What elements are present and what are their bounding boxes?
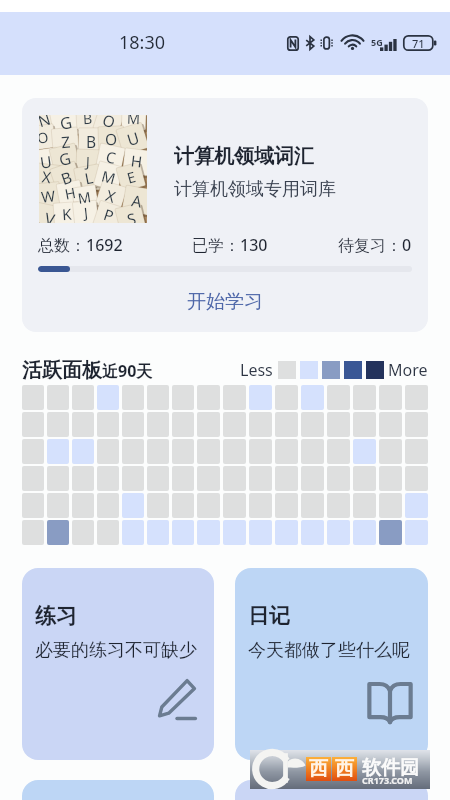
staticText: J — [86, 152, 90, 171]
staticText: K — [61, 204, 73, 223]
button[interactable]: N — [22, 98, 428, 332]
staticText: A — [130, 189, 144, 212]
staticText: 71 — [412, 36, 425, 51]
staticText: More — [388, 359, 428, 381]
staticText: H — [63, 183, 78, 205]
staticText: 已学：130 — [192, 234, 268, 256]
staticText: 必要的练习不可缺少 — [35, 639, 197, 662]
staticText: L — [83, 167, 95, 189]
staticText: 18:30 — [119, 30, 166, 55]
staticText: B — [58, 166, 75, 189]
button[interactable] — [22, 780, 214, 800]
staticText: 日记 — [248, 603, 290, 629]
staticText: 西 — [309, 757, 328, 781]
other: Diary — [366, 682, 414, 722]
staticText: V — [43, 207, 57, 223]
staticText: 软件园 — [362, 756, 419, 780]
button[interactable]: 开始学习 — [22, 279, 428, 325]
staticText: 计算机领域词汇 — [174, 144, 314, 169]
staticText: CR173.COM — [362, 774, 413, 786]
button[interactable] — [235, 780, 428, 800]
staticText: 待复习：0 — [338, 234, 412, 256]
staticText: X — [41, 166, 53, 189]
staticText: G — [56, 147, 73, 171]
button[interactable]: 练习 — [22, 568, 214, 760]
staticText: X — [103, 185, 119, 208]
staticText: G — [58, 115, 74, 135]
staticText: J — [83, 203, 89, 223]
staticText: U — [39, 150, 53, 174]
staticText: 5G — [371, 36, 383, 48]
staticText: 计算机领域专用词库 — [174, 178, 336, 201]
staticText: Less — [240, 359, 273, 381]
staticText: O — [39, 127, 50, 148]
staticText: U — [124, 127, 142, 151]
staticText: 总数：1692 — [38, 234, 123, 256]
staticText: P — [101, 204, 117, 223]
staticText: S — [125, 207, 138, 223]
staticText: Z — [60, 131, 71, 152]
staticText: N — [39, 115, 53, 131]
staticText: M — [127, 115, 141, 128]
staticText: 近90天 — [102, 360, 153, 382]
staticText: C — [104, 146, 118, 169]
staticText: M — [76, 187, 93, 209]
button[interactable]: 日记 — [235, 568, 428, 760]
staticText: 今天都做了些什么呢 — [248, 639, 410, 662]
staticText: O — [105, 129, 118, 150]
staticText: W — [40, 185, 56, 207]
staticText: M — [99, 166, 118, 188]
staticText: B — [86, 131, 97, 152]
staticText: 练习 — [35, 603, 77, 629]
staticText: H — [130, 150, 144, 173]
other: Practice — [154, 678, 200, 722]
staticText: B — [82, 115, 93, 128]
staticText: E — [124, 166, 138, 188]
staticText: O — [100, 115, 119, 133]
staticText: 西 — [335, 757, 354, 781]
staticText: 活跃面板 — [22, 358, 102, 383]
staticText: 开始学习 — [187, 290, 263, 314]
